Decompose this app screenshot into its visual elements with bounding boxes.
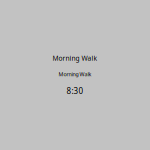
staticText: 8:30: [66, 86, 83, 96]
staticText: Morning Walk: [58, 71, 91, 78]
staticText: Morning Walk: [52, 54, 97, 63]
